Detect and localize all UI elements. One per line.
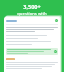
other: Correct (55, 19, 58, 22)
button[interactable] (6, 58, 15, 60)
button[interactable]: Selected answer (6, 48, 58, 55)
staticText: questions with explanations (17, 11, 47, 22)
other: Selected answer (54, 50, 57, 53)
button[interactable]: Correct (4, 17, 60, 72)
staticText: 3,500+ (23, 3, 41, 10)
